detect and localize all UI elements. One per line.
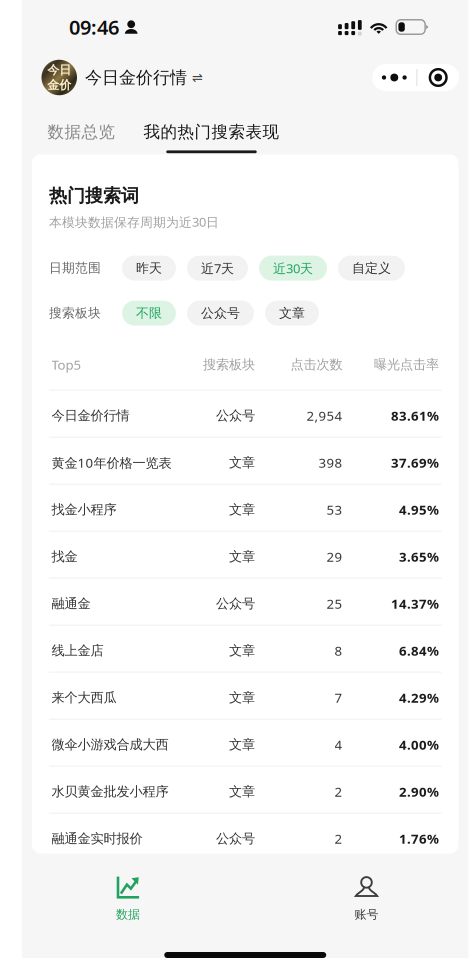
staticText: 曝光点击率 <box>374 356 439 373</box>
staticText: 热门搜索词 <box>49 184 139 207</box>
staticText: 4.95% <box>399 501 439 519</box>
staticText: 2 <box>334 830 342 848</box>
staticText: 不限 <box>136 305 162 321</box>
staticText: 搜索板块 <box>49 305 101 321</box>
button[interactable]: 数据 <box>91 876 165 922</box>
staticText: 公众号 <box>216 830 255 847</box>
staticText: 4.29% <box>399 689 439 707</box>
staticText: 融通金实时报价 <box>51 830 142 847</box>
staticText: 398 <box>318 454 342 472</box>
staticText: 线上金店 <box>51 642 103 659</box>
button[interactable]: 文章 <box>265 301 319 326</box>
staticText: 公众号 <box>216 595 255 612</box>
staticText: 数据 <box>116 907 140 922</box>
staticText: 公众号 <box>216 407 255 424</box>
staticText: 本模块数据保存周期为近30日 <box>49 213 219 231</box>
button[interactable]: 数据总览 <box>47 101 115 154</box>
staticText: ⇌ <box>192 70 203 85</box>
staticText: 日期范围 <box>49 260 101 276</box>
staticText: 我的热门搜索表现 <box>143 122 279 142</box>
button[interactable]: 不限 <box>122 301 176 326</box>
staticText: 今日金价行情 <box>51 407 129 424</box>
button[interactable]: 近30天 <box>259 256 327 281</box>
staticText: 37.69% <box>391 454 439 472</box>
staticText: 金价 <box>47 77 71 93</box>
staticText: 2,954 <box>306 407 342 425</box>
staticText: 公众号 <box>201 305 240 321</box>
staticText: 来个大西瓜 <box>51 689 116 706</box>
staticText: 2.90% <box>399 783 439 801</box>
staticText: 文章 <box>229 736 255 753</box>
staticText: 今日金价行情 <box>85 67 187 88</box>
staticText: 4.00% <box>399 736 439 754</box>
staticText: 文章 <box>229 642 255 659</box>
staticText: 数据总览 <box>47 122 115 142</box>
staticText: 融通金 <box>51 595 90 612</box>
staticText: 今日 <box>47 62 71 77</box>
staticText: 账号 <box>354 907 378 922</box>
staticText: 2 <box>334 783 342 801</box>
button[interactable]: 公众号 <box>187 301 254 326</box>
staticText: 09:46 <box>69 13 119 41</box>
staticText: 25 <box>326 595 342 613</box>
staticText: 文章 <box>229 548 255 565</box>
staticText: 7 <box>334 689 342 707</box>
staticText: 搜索板块 <box>203 356 255 373</box>
staticText: 文章 <box>229 783 255 800</box>
staticText: 近30天 <box>273 259 313 277</box>
staticText: 文章 <box>229 454 255 471</box>
staticText: 点击次数 <box>290 356 342 373</box>
staticText: 14.37% <box>391 595 439 613</box>
button[interactable]: Close mini program <box>417 64 459 91</box>
staticText: 文章 <box>229 689 255 706</box>
staticText: 近7天 <box>201 259 234 277</box>
button[interactable]: 近7天 <box>187 256 248 281</box>
staticText: 黄金10年价格一览表 <box>51 454 171 472</box>
staticText: 3.65% <box>399 548 439 566</box>
button[interactable]: 昨天 <box>122 256 176 281</box>
button[interactable]: 我的热门搜索表现 <box>143 101 279 154</box>
staticText: 文章 <box>229 501 255 518</box>
staticText: 6.84% <box>399 642 439 660</box>
staticText: 83.61% <box>391 407 439 425</box>
staticText: 29 <box>326 548 342 566</box>
staticText: 找金 <box>51 548 77 565</box>
staticText: 自定义 <box>352 260 391 276</box>
button[interactable]: 自定义 <box>338 256 405 281</box>
staticText: 找金小程序 <box>51 501 116 518</box>
staticText: 1.76% <box>399 830 439 848</box>
staticText: 53 <box>326 501 342 519</box>
staticText: Top5 <box>51 356 81 374</box>
button[interactable]: More options <box>372 64 416 91</box>
staticText: 昨天 <box>136 260 162 276</box>
staticText: 文章 <box>279 305 305 321</box>
staticText: 微伞小游戏合成大西 <box>51 736 168 753</box>
staticText: 8 <box>334 642 342 660</box>
staticText: 4 <box>334 736 342 754</box>
staticText: 水贝黄金批发小程序 <box>51 783 168 800</box>
button[interactable]: 账号 <box>329 876 403 922</box>
